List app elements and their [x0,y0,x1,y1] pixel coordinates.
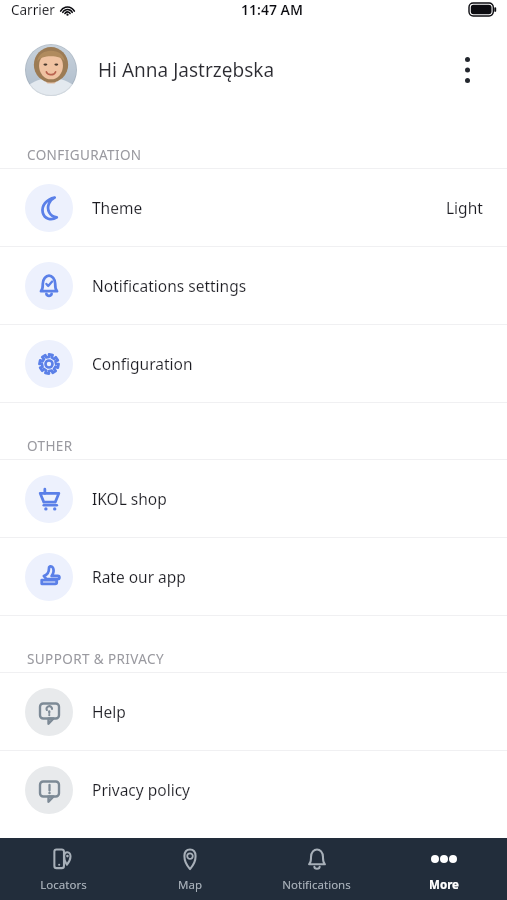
staticText: Locators [40,877,87,893]
button[interactable]: More [380,838,507,900]
staticText: Carrier [11,1,55,19]
staticText: Theme [92,197,143,218]
staticText: CONFIGURATION [27,146,142,164]
button[interactable]: Notifications [253,838,380,900]
button[interactable]: More options [445,48,489,92]
staticText: More [429,877,459,893]
staticText: Help [92,701,126,722]
staticText: Map [178,877,202,893]
button[interactable]: Rate our app [0,538,507,615]
staticText: SUPPORT & PRIVACY [27,650,164,668]
button[interactable]: Theme [0,169,507,246]
staticText: Privacy policy [92,779,190,800]
staticText: Hi Anna Jastrzębska [98,57,275,83]
staticText: Light [446,197,483,218]
staticText: Notifications settings [92,275,247,296]
button[interactable]: IKOL shop [0,460,507,537]
button[interactable]: Hi Anna Jastrzębska [0,30,507,110]
button[interactable]: Privacy policy [0,751,507,828]
staticText: 11:47 AM [241,0,303,19]
staticText: OTHER [27,437,73,455]
staticText: IKOL shop [92,488,167,509]
button[interactable]: Notifications settings [0,247,507,324]
staticText: Configuration [92,353,193,374]
staticText: Rate our app [92,566,186,587]
button[interactable]: Configuration [0,325,507,402]
button[interactable]: Map [126,838,253,900]
staticText: Notifications [282,877,351,893]
button[interactable]: Locators [0,838,126,900]
button[interactable]: Help [0,673,507,750]
